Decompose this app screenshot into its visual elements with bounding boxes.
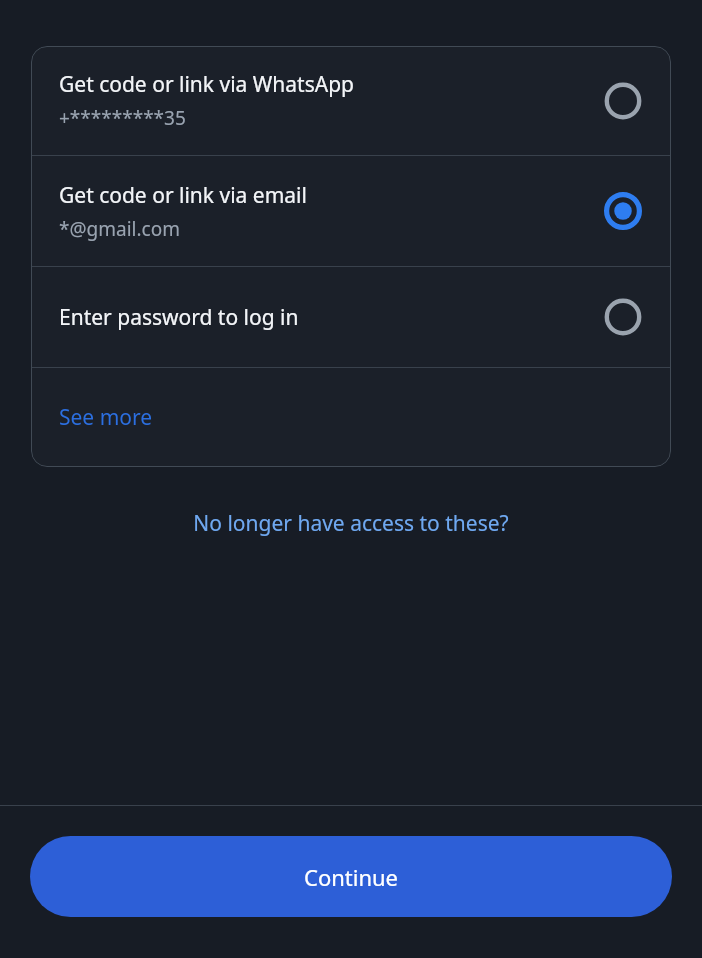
staticText: Get code or link via email <box>59 181 307 210</box>
staticText: No longer have access to these? <box>193 509 509 538</box>
staticText: Enter password to log in <box>59 303 299 332</box>
staticText: Continue <box>304 862 399 892</box>
button[interactable]: Continue <box>30 836 672 917</box>
button[interactable]: Get code or link via email <box>31 156 671 266</box>
staticText: See more <box>59 403 153 432</box>
staticText: *@gmail.com <box>59 216 180 242</box>
button[interactable]: See more <box>31 368 671 467</box>
button[interactable]: Get code or link via WhatsApp <box>31 46 671 155</box>
staticText: Get code or link via WhatsApp <box>59 70 355 99</box>
button[interactable]: Enter password to log in <box>31 267 671 367</box>
staticText: +*********35 <box>59 105 186 131</box>
button[interactable]: No longer have access to these? <box>185 505 517 542</box>
